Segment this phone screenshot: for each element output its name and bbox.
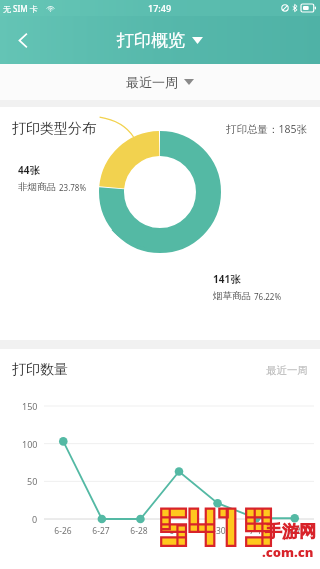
staticText: 6-29 [169,525,187,537]
staticText: 7-1 [249,525,262,537]
staticText: 非烟商品 [18,180,59,193]
staticText: 6-30 [208,525,226,537]
staticText: 最近一周 [126,74,178,90]
staticText: 打印总量：185张 [226,122,308,136]
staticText: 17:49 [148,2,172,14]
staticText: 无 SIM 卡 [3,3,38,14]
button[interactable]: Back [0,17,46,63]
staticText: 100 [22,438,38,450]
staticText: 150 [22,400,38,412]
staticText: 44张 [18,163,40,177]
staticText: 打印类型分布 [12,120,96,138]
button[interactable]: 打印概览 [109,24,211,57]
staticText: 手游网 [265,521,316,542]
staticText: 烟草商品 [213,289,254,302]
staticText: 23.78% [59,182,87,193]
staticText: 最近一周 [266,364,308,377]
staticText: 6-27 [92,525,110,537]
staticText: 打印概览 [117,30,185,51]
staticText: 6-26 [54,525,72,537]
staticText: 0 [32,513,38,525]
staticText: 50 [27,475,38,487]
staticText: 打印数量 [12,361,68,379]
staticText: 6-28 [130,525,148,537]
button[interactable]: 最近一周 [116,69,204,95]
staticText: 7-2 [288,525,301,537]
staticText: 141张 [213,272,241,286]
staticText: 76.22% [254,291,282,302]
staticText: .com.cn [262,543,314,561]
